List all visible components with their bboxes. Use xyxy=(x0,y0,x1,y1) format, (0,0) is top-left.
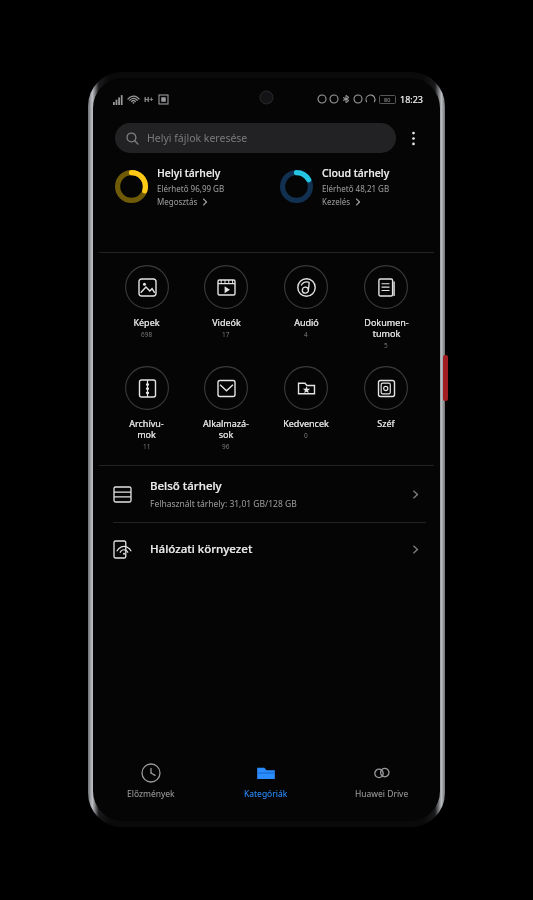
button[interactable]: Audió xyxy=(266,263,346,341)
staticText: Belső tárhely xyxy=(150,478,222,494)
button[interactable]: Előzmények xyxy=(93,755,208,807)
staticText: Archívu- mok xyxy=(129,417,164,440)
staticText: Alkalmazá- sok xyxy=(203,417,249,440)
staticText: 0 xyxy=(304,431,308,440)
staticText: H+ xyxy=(144,95,154,105)
staticText: Kategóriák xyxy=(244,788,288,800)
staticText: Elérhető 48,21 GB xyxy=(322,183,390,194)
button[interactable]: Huawei Drive xyxy=(324,755,440,807)
staticText: Kezelés xyxy=(322,196,351,207)
staticText: 17 xyxy=(222,330,230,339)
staticText: Videók xyxy=(212,316,241,328)
staticText: Dokumen- tumok xyxy=(364,316,409,339)
staticText: 698 xyxy=(141,330,153,339)
staticText: Cloud tárhely xyxy=(322,166,390,180)
staticText: Huawei Drive xyxy=(355,788,409,800)
staticText: 96 xyxy=(222,442,230,451)
button[interactable]: Archívu- mok xyxy=(107,364,186,453)
staticText: Széf xyxy=(377,417,395,429)
staticText: Megosztás xyxy=(157,196,198,207)
button[interactable]: Képek xyxy=(107,263,186,341)
staticText: Kedvencek xyxy=(283,417,329,429)
staticText: 11 xyxy=(143,442,151,451)
staticText: Felhasznált tárhely: 31,01 GB/128 GB xyxy=(150,498,297,510)
button[interactable]: Kategóriák xyxy=(208,755,324,807)
staticText: Hálózati környezet xyxy=(150,541,411,557)
button[interactable]: Helyi fájlok keresése xyxy=(115,123,396,153)
staticText: Képek xyxy=(133,316,160,328)
staticText: Audió xyxy=(294,316,319,328)
button[interactable]: More options xyxy=(396,121,430,155)
staticText: 4 xyxy=(304,330,308,339)
staticText: Helyi fájlok keresése xyxy=(147,131,248,145)
staticText: 18:23 xyxy=(400,93,424,105)
staticText: Helyi tárhely xyxy=(157,166,221,180)
button[interactable]: Helyi tárhely xyxy=(101,166,266,207)
button[interactable]: Dokumen- tumok xyxy=(346,263,426,352)
button[interactable]: Belső tárhely xyxy=(93,466,440,522)
staticText: 5 xyxy=(384,341,388,350)
button[interactable]: Kedvencek xyxy=(266,364,346,442)
button[interactable]: Alkalmazá- sok xyxy=(186,364,266,453)
staticText: Elérhető 96,99 GB xyxy=(157,183,225,194)
button[interactable]: Hálózati környezet xyxy=(93,523,440,575)
button[interactable]: Széf xyxy=(346,364,426,431)
staticText: Előzmények xyxy=(127,788,175,800)
button[interactable]: Videók xyxy=(186,263,266,341)
staticText: 80 xyxy=(384,96,391,103)
button[interactable]: Cloud tárhely xyxy=(266,166,432,207)
